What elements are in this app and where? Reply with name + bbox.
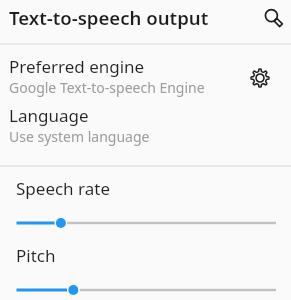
staticText: Preferred engine (9, 55, 145, 78)
button[interactable]: Language (0, 99, 291, 154)
staticText: Speech rate (16, 177, 110, 200)
button[interactable]: Search (256, 2, 291, 38)
staticText: Text-to-speech output (9, 5, 209, 30)
button[interactable] (0, 189, 291, 219)
staticText: Use system language (9, 127, 150, 146)
button[interactable]: Preferred engine (0, 44, 291, 99)
staticText: Google Text-to-speech Engine (9, 78, 205, 97)
button[interactable]: Engine settings (245, 63, 275, 93)
staticText: Language (9, 104, 89, 127)
button[interactable] (0, 256, 291, 286)
staticText: Pitch (16, 244, 56, 267)
